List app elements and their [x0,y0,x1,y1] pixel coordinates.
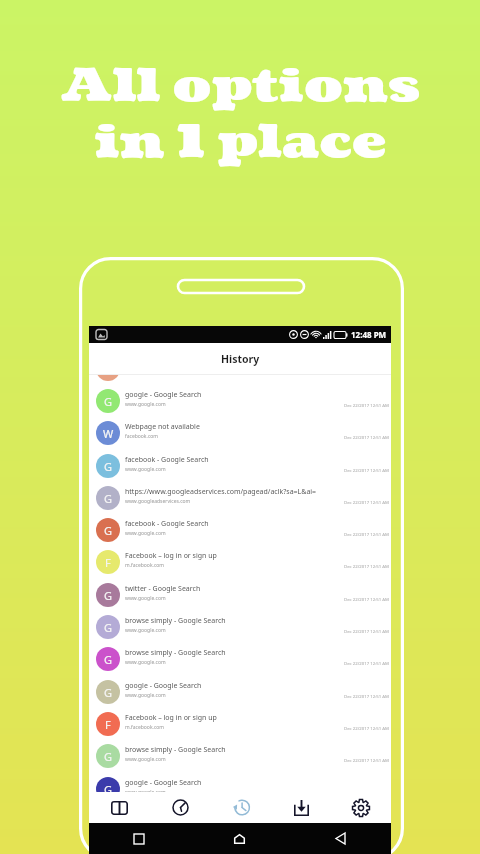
staticText: G [104,620,113,635]
staticText: F [105,717,111,732]
staticText: facebook - Google Search [125,519,209,529]
staticText: www.google.com [125,401,166,408]
staticText: www.google.com [125,369,166,376]
button[interactable]: G [89,579,391,611]
staticText: G [104,523,113,538]
button[interactable]: G [89,385,391,417]
button[interactable]: G [89,740,391,772]
staticText: All options in 1 place [0,56,480,174]
staticText: browse simply - Google Search [125,648,226,658]
staticText: G [104,362,113,377]
staticText: F [105,555,111,570]
staticText: facebook.com [125,433,158,440]
button[interactable]: Settings [331,792,391,823]
button[interactable]: W [89,417,391,449]
staticText: Dec 22/2017 12:51 AM [344,596,389,602]
staticText: Dec 22/2017 12:51 AM [344,660,389,666]
button[interactable]: G [89,482,391,514]
button[interactable]: G [89,643,391,675]
button[interactable]: F [89,708,391,740]
staticText: browse simply - Google Search [125,745,226,755]
staticText: Dec 22/2017 12:51 AM [344,628,389,634]
staticText: Dec 22/2017 12:51 AM [344,531,389,537]
staticText: Dec 22/2017 12:51 AM [344,693,389,699]
staticText: G [104,459,113,474]
button[interactable]: Speed dial [150,792,211,823]
staticText: G [104,394,113,409]
staticText: Dec 22/2017 12:51 AM [344,757,389,763]
button[interactable]: Bookmarks [89,792,150,823]
staticText: https://www.googleadservices.com/pagead/… [125,487,317,497]
staticText: google - Google Search [125,778,202,788]
staticText: www.google.com [125,789,166,796]
staticText: www.google.com [125,595,166,602]
staticText: 12:48 PM [351,329,387,340]
staticText: www.google.com [125,692,166,699]
staticText: facebook - Google Search [125,455,209,465]
staticText: www.google.com [125,756,166,763]
staticText: m.facebook.com [125,724,164,731]
button[interactable]: G [89,676,391,708]
staticText: www.google.com [125,530,166,537]
staticText: G [104,491,113,506]
staticText: twitter - Google Search [125,584,201,594]
staticText: browse simply - Google Search [125,616,226,626]
button[interactable]: Back [290,823,391,854]
staticText: Facebook – log in or sign up [125,713,217,723]
staticText: W [103,426,114,441]
staticText: G [104,652,113,667]
staticText: google - Google Search [125,390,202,400]
staticText: Dec 22/2017 12:51 AM [344,434,389,440]
button[interactable]: Downloads [271,792,331,823]
staticText: G [104,685,113,700]
staticText: Facebook – log in or sign up [125,551,217,561]
button[interactable]: Home [189,823,290,854]
staticText: www.google.com [125,466,166,473]
button[interactable]: G [89,353,391,385]
staticText: Dec 22/2017 12:51 AM [344,467,389,473]
staticText: www.google.com [125,659,166,666]
button[interactable]: G [89,514,391,546]
staticText: m.facebook.com [125,562,164,569]
button[interactable]: F [89,546,391,578]
staticText: www.googleadservices.com [125,498,191,505]
staticText: G [104,749,113,764]
staticText: G [104,588,113,603]
staticText: Dec 22/2017 12:51 AM [344,402,389,408]
staticText: G [104,782,113,797]
staticText: google - Google Search [125,681,202,691]
staticText: Webpage not available [125,422,200,432]
button[interactable]: History [211,792,271,823]
button[interactable]: G [89,611,391,643]
staticText: www.google.com [125,627,166,634]
staticText: Dec 22/2017 12:51 AM [344,499,389,505]
staticText: Dec 22/2017 12:51 AM [344,370,389,376]
button[interactable]: Recents [89,823,189,854]
staticText: History [221,352,260,366]
staticText: Dec 22/2017 12:51 AM [344,563,389,569]
button[interactable]: G [89,773,391,805]
staticText: Dec 22/2017 12:51 AM [344,725,389,731]
button[interactable]: G [89,450,391,482]
